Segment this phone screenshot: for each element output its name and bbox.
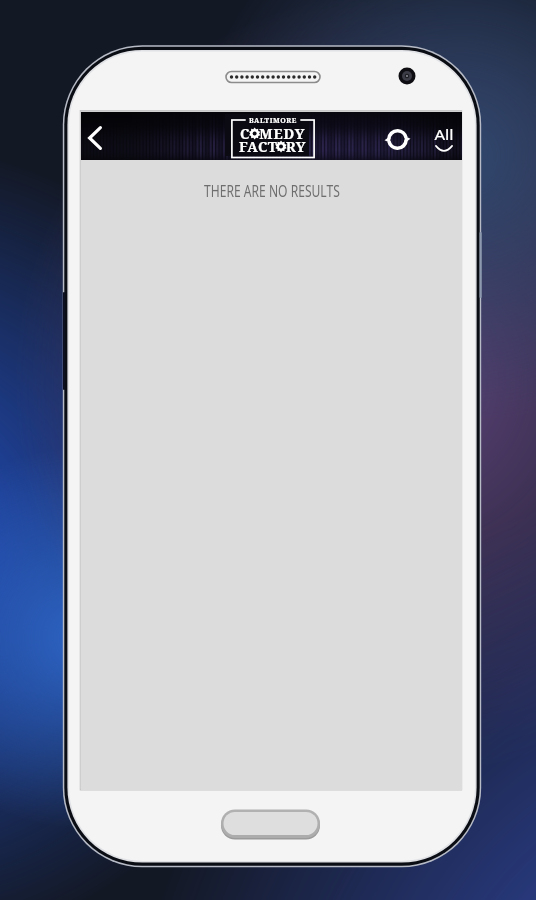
button[interactable]: All (422, 115, 466, 159)
staticText: All (434, 125, 455, 144)
button[interactable]: Back (81, 116, 108, 160)
staticText: BALTIMORE (249, 116, 297, 126)
staticText: C MEDY (240, 124, 306, 143)
staticText: THERE ARE NO RESULTS (204, 180, 340, 202)
staticText: FACT RY (239, 137, 307, 156)
button[interactable]: Refresh (375, 117, 419, 161)
